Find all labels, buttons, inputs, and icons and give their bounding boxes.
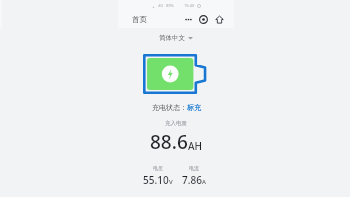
- staticText: V: [169, 178, 173, 186]
- staticText: 电压: [153, 165, 163, 171]
- staticText: 标充: [187, 103, 201, 112]
- staticText: 88.6: [150, 129, 188, 155]
- staticText: A: [202, 178, 206, 186]
- staticText: 充入电量: [165, 120, 187, 127]
- other: Close: [199, 15, 208, 24]
- button[interactable]: 电压: [140, 165, 176, 187]
- button[interactable]: 简体中文: [159, 34, 193, 42]
- staticText: 15:40: [184, 3, 195, 8]
- staticText: 简体中文: [159, 34, 185, 42]
- staticText: 89%: [166, 3, 174, 8]
- button[interactable]: 首页: [132, 15, 147, 24]
- button[interactable]: 电流: [176, 165, 212, 187]
- staticText: 55.10: [143, 173, 169, 187]
- staticText: 电流: [189, 165, 199, 171]
- other: Battery charging indicator: [143, 54, 209, 94]
- button[interactable]: More options: [183, 14, 208, 25]
- staticText: 充电状态：: [152, 103, 187, 112]
- button[interactable]: Home: [215, 15, 224, 24]
- staticText: AH: [188, 139, 203, 153]
- staticText: 7.86: [182, 173, 202, 187]
- staticText: 4G: [158, 3, 164, 8]
